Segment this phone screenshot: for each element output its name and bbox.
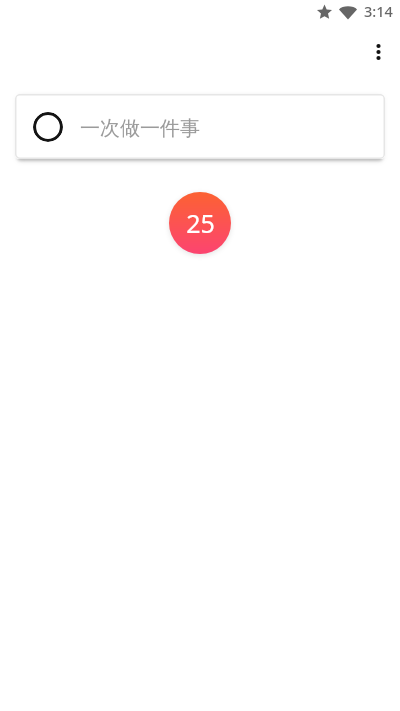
staticText: 25 bbox=[186, 206, 215, 240]
button[interactable]: Mark task complete bbox=[15, 94, 385, 159]
staticText: 3:14 bbox=[364, 1, 393, 21]
button[interactable]: Start 25 minute pomodoro timer bbox=[169, 192, 231, 254]
button[interactable]: More options bbox=[358, 31, 398, 71]
button[interactable]: Mark task complete bbox=[33, 112, 63, 142]
staticText: 一次做一件事 bbox=[80, 116, 200, 141]
